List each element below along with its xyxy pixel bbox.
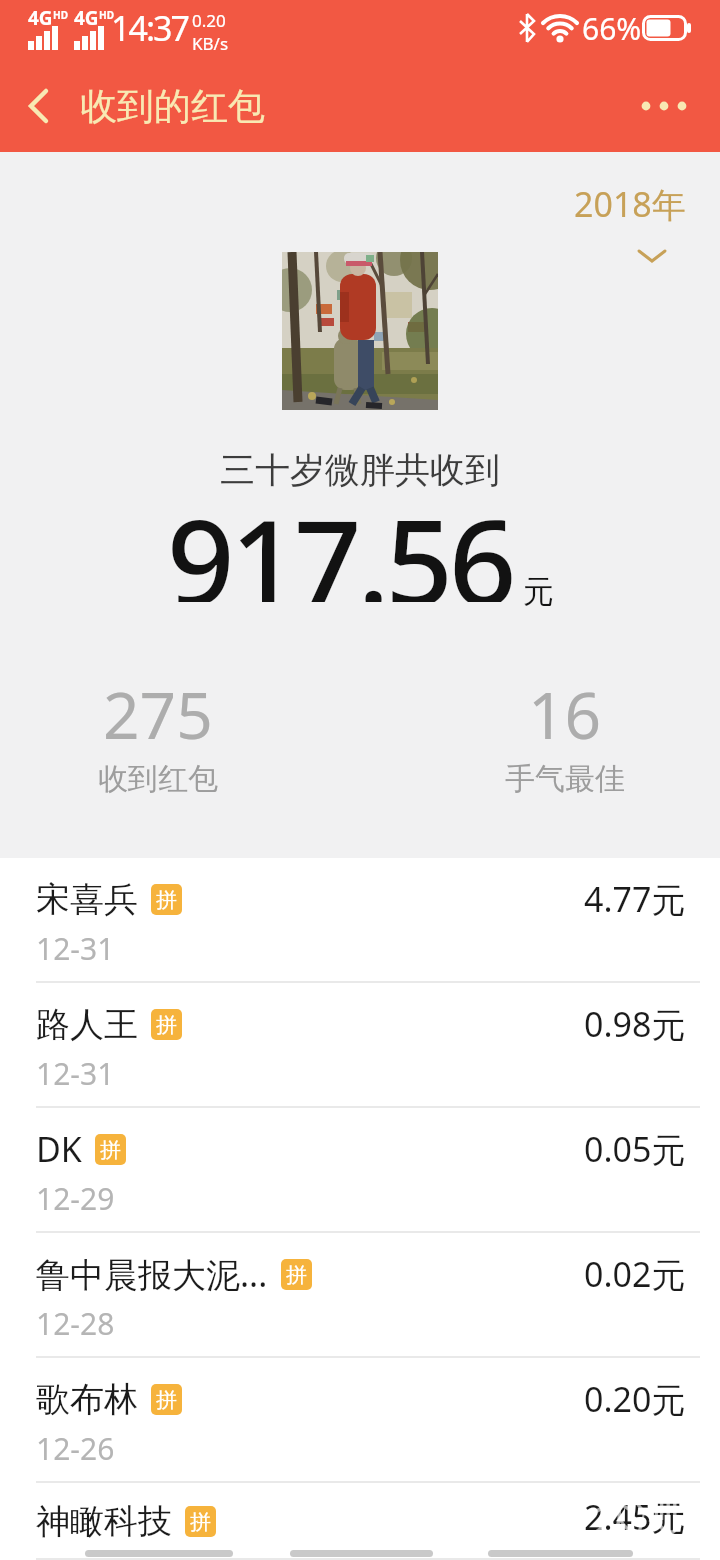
- button[interactable]: 歌布林: [0, 1358, 720, 1483]
- button[interactable]: 路人王: [0, 983, 720, 1108]
- staticText: 拼: [100, 1137, 121, 1163]
- staticText: 拼: [190, 1509, 211, 1535]
- staticText: 歌布林: [36, 1378, 138, 1421]
- staticText: 275: [103, 671, 213, 758]
- button[interactable]: [14, 82, 62, 130]
- staticText: HD: [53, 8, 68, 22]
- staticText: 12-31: [36, 928, 115, 964]
- staticText: 0.20: [192, 9, 226, 32]
- staticText: 0.02元: [584, 1251, 686, 1297]
- staticText: 0.05元: [584, 1126, 686, 1172]
- staticText: 4G: [74, 5, 99, 31]
- staticText: 0.98元: [584, 1001, 686, 1047]
- staticText: 元: [523, 572, 554, 611]
- staticText: 手气最佳: [505, 760, 625, 798]
- staticText: KB/s: [192, 32, 229, 55]
- staticText: 拼: [156, 1387, 177, 1413]
- staticText: 0.20元: [584, 1376, 686, 1422]
- staticText: 12-29: [36, 1178, 115, 1214]
- button[interactable]: 鲁中晨报大泥...: [0, 1233, 720, 1358]
- staticText: 917.56: [167, 480, 513, 602]
- staticText: 66%: [582, 8, 642, 49]
- staticText: HD: [99, 8, 114, 22]
- staticText: 宋喜兵: [36, 878, 138, 921]
- staticText: 4.77元: [584, 876, 686, 922]
- staticText: DK: [36, 1126, 82, 1172]
- staticText: 众测: [592, 1486, 680, 1541]
- staticText: 2018年: [574, 181, 686, 227]
- staticText: 收到红包: [98, 760, 218, 798]
- staticText: 拼: [156, 1012, 177, 1038]
- button[interactable]: [636, 84, 692, 128]
- staticText: 收到的红包: [80, 83, 265, 130]
- staticText: 2.45元: [584, 1494, 686, 1540]
- staticText: 三十岁微胖共收到: [220, 448, 500, 492]
- button[interactable]: DK: [0, 1108, 720, 1233]
- staticText: 神瞰科技: [36, 1500, 172, 1543]
- staticText: 4G: [28, 5, 53, 31]
- button[interactable]: 神瞰科技: [0, 1483, 720, 1560]
- button[interactable]: 2018年: [574, 178, 686, 230]
- staticText: 路人王: [36, 1003, 138, 1046]
- staticText: 12-31: [36, 1053, 115, 1089]
- staticText: 14:37: [111, 5, 188, 51]
- staticText: 拼: [156, 887, 177, 913]
- staticText: 12-26: [36, 1428, 115, 1464]
- button[interactable]: 宋喜兵: [0, 858, 720, 983]
- staticText: 16: [528, 671, 602, 758]
- staticText: 拼: [286, 1262, 307, 1288]
- staticText: 12-28: [36, 1303, 115, 1339]
- staticText: 鲁中晨报大泥...: [36, 1251, 268, 1297]
